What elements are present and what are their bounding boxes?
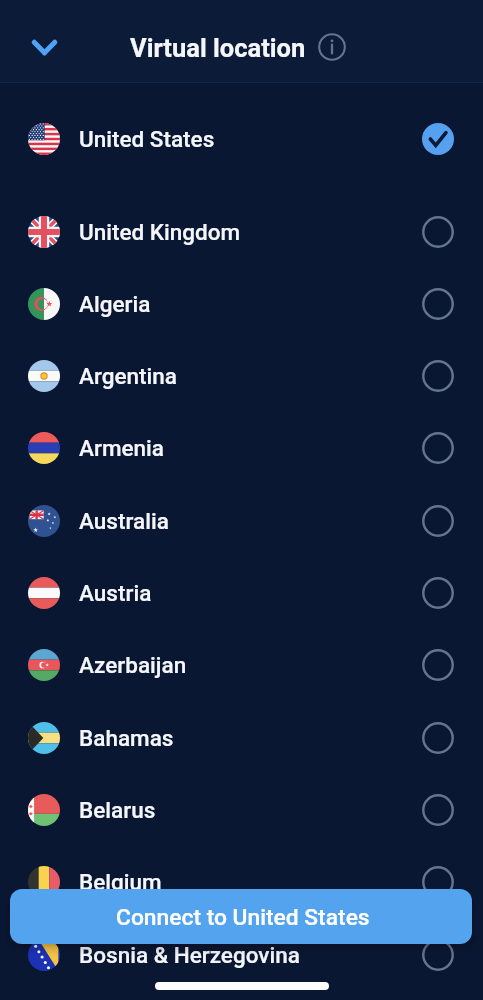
staticText: Australia [79, 508, 169, 534]
button[interactable]: Azerbaijan [0, 629, 483, 701]
staticText: Belarus [79, 797, 156, 823]
button[interactable]: Info [317, 32, 347, 62]
staticText: Azerbaijan [79, 652, 187, 678]
button[interactable]: United Kingdom [0, 196, 483, 268]
button[interactable]: Austria [0, 557, 483, 629]
staticText: United States [79, 126, 215, 152]
staticText: Connect to United States [116, 904, 370, 931]
staticText: Virtual location [130, 33, 306, 63]
button[interactable]: Argentina [0, 340, 483, 412]
button[interactable]: Belgium [0, 846, 483, 918]
staticText: Bosnia & Herzegovina [79, 942, 300, 968]
button[interactable]: Collapse [20, 23, 68, 71]
staticText: Austria [79, 580, 152, 606]
staticText: Argentina [79, 363, 177, 389]
staticText: Bahamas [79, 725, 174, 751]
button[interactable]: United States [0, 103, 483, 175]
button[interactable]: Bahamas [0, 702, 483, 774]
button[interactable]: Belarus [0, 774, 483, 846]
staticText: Belgium [79, 869, 162, 895]
button[interactable]: Algeria [0, 268, 483, 340]
staticText: Armenia [79, 435, 165, 461]
button[interactable]: Connect to United States [10, 889, 472, 944]
button[interactable]: Bosnia & Herzegovina [0, 919, 483, 991]
staticText: Algeria [79, 291, 151, 317]
button[interactable]: Australia [0, 485, 483, 557]
staticText: United Kingdom [79, 219, 241, 245]
button[interactable]: Armenia [0, 412, 483, 484]
